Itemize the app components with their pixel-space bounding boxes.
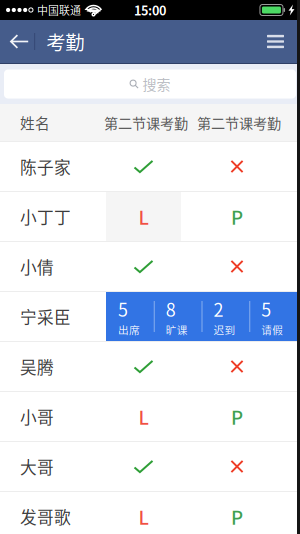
button[interactable]: 小丁丁 (0, 192, 300, 241)
staticText: 陈子家 (20, 154, 71, 178)
staticText: 5 (261, 296, 271, 322)
staticText: L (138, 203, 148, 230)
staticText: 15:00 (134, 1, 166, 19)
staticText: 宁采臣 (20, 304, 71, 328)
staticText: L (138, 403, 148, 430)
staticText: 小丁丁 (20, 204, 71, 228)
staticText: P (231, 503, 243, 530)
staticText: 第二节课考勤 (104, 112, 188, 133)
staticText: 小哥 (20, 404, 54, 428)
button[interactable]: 吴腾 (0, 342, 300, 391)
staticText: L (138, 503, 148, 530)
staticText: P (231, 403, 243, 430)
staticText: 2 (213, 296, 223, 322)
staticText: 搜索 (142, 74, 170, 94)
button[interactable]: 小哥 (0, 392, 300, 441)
staticText: 姓名 (20, 112, 50, 133)
button[interactable]: 大哥 (0, 442, 300, 491)
button[interactable]: 发哥歌 (0, 492, 300, 534)
staticText: 发哥歌 (20, 504, 71, 528)
staticText: 出席 (118, 322, 140, 337)
staticText: 中国联通 (37, 2, 81, 18)
staticText: 大哥 (20, 454, 54, 478)
staticText: 迟到 (213, 322, 235, 337)
staticText: 旷课 (166, 322, 188, 337)
staticText: 请假 (261, 322, 283, 337)
button[interactable]: Menu (257, 19, 300, 63)
button[interactable]: 小倩 (0, 242, 300, 291)
staticText: 吴腾 (20, 354, 54, 378)
button[interactable]: 陈子家 (0, 142, 300, 191)
staticText: 5 (118, 296, 128, 322)
button[interactable]: Back (0, 20, 34, 63)
staticText: 8 (166, 296, 176, 322)
staticText: 考勤 (46, 27, 84, 55)
button[interactable]: 搜索 (0, 69, 300, 98)
staticText: P (231, 203, 243, 230)
staticText: 小倩 (20, 254, 54, 278)
staticText: 第二节课考勤 (197, 112, 281, 133)
